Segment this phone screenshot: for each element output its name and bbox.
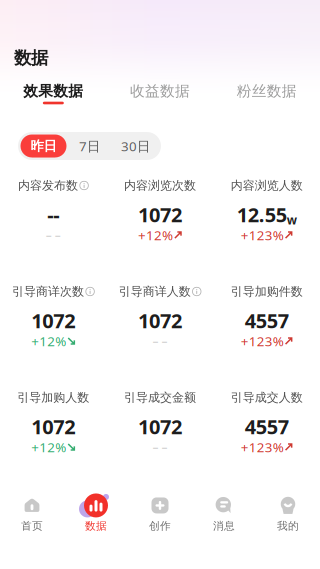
staticText: -- [47, 201, 59, 228]
button[interactable]: 30日 [112, 134, 158, 157]
staticText: 1072 [31, 307, 75, 334]
staticText: w [287, 212, 297, 228]
staticText: 4557 [245, 307, 289, 334]
staticText: 内容浏览次数 [124, 178, 196, 193]
staticText: +123% [241, 226, 284, 244]
button[interactable]: 效果数据 [0, 84, 107, 104]
button[interactable]: 首页 [0, 493, 64, 534]
button[interactable]: 我的 [256, 493, 320, 534]
staticText: 数据 [85, 519, 107, 532]
staticText: 引导加购人数 [17, 390, 89, 405]
button[interactable]: 7日 [66, 134, 112, 157]
staticText: +12% [31, 332, 66, 350]
staticText: 引导商详人数 [119, 284, 191, 299]
staticText: +12% [138, 226, 173, 244]
button[interactable]: 创作 [128, 493, 192, 534]
staticText: +12% [31, 438, 66, 456]
staticText: 数据 [14, 47, 48, 69]
staticText: 收益数据 [130, 82, 190, 100]
staticText: 12.55 [237, 201, 287, 228]
staticText: 引导成交金额 [124, 390, 196, 405]
button[interactable]: 昨日 [20, 134, 66, 157]
staticText: 消息 [213, 519, 235, 532]
staticText: 30日 [121, 137, 150, 155]
staticText: 我的 [277, 519, 299, 532]
staticText: 首页 [21, 519, 43, 532]
staticText: 7日 [79, 137, 100, 155]
staticText: 创作 [149, 519, 171, 532]
staticText: 内容发布数 [18, 178, 78, 193]
staticText: 1072 [138, 201, 182, 228]
staticText: 引导加购件数 [231, 284, 303, 299]
button[interactable]: 数据 [64, 493, 128, 534]
staticText: 1072 [31, 413, 75, 440]
button[interactable]: 粉丝数据 [213, 84, 320, 104]
staticText: 昨日 [30, 138, 56, 154]
staticText: 引导商详次数 [12, 284, 84, 299]
button[interactable]: 消息 [192, 493, 256, 534]
staticText: 1072 [138, 307, 182, 334]
staticText: 1072 [138, 413, 182, 440]
button[interactable]: 收益数据 [107, 84, 213, 104]
staticText: +123% [241, 332, 284, 350]
staticText: – – [152, 333, 167, 349]
staticText: +123% [241, 438, 284, 456]
staticText: 4557 [245, 413, 289, 440]
staticText: 引导成交人数 [231, 390, 303, 405]
staticText: – – [46, 227, 61, 243]
staticText: – – [152, 439, 167, 455]
staticText: 效果数据 [23, 82, 83, 100]
staticText: 内容浏览人数 [231, 178, 303, 193]
staticText: 粉丝数据 [237, 82, 297, 100]
